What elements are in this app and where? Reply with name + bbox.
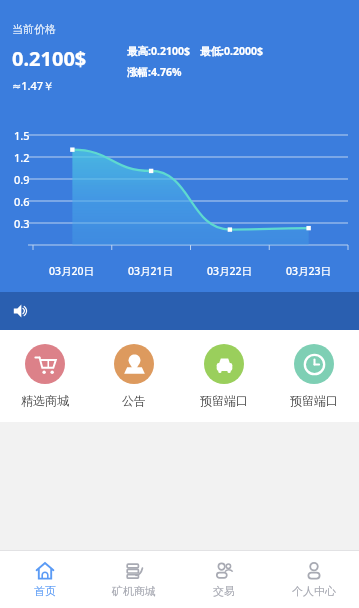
staticText: 1.5: [14, 128, 30, 143]
button[interactable]: 个人中心: [269, 550, 359, 608]
staticText: 精选商城: [21, 393, 69, 408]
staticText: 03月21日: [128, 264, 174, 278]
button[interactable]: 交易: [179, 550, 269, 608]
staticText: 0.6: [14, 194, 30, 209]
staticText: 03月20日: [49, 264, 95, 278]
staticText: 矿机商城: [112, 584, 156, 598]
button[interactable]: 精选商城: [0, 344, 89, 408]
staticText: 当前价格: [12, 22, 56, 36]
staticText: 0.9: [14, 172, 30, 187]
button[interactable]: 首页: [0, 550, 89, 608]
button[interactable]: 公告: [89, 344, 179, 408]
staticText: 03月22日: [207, 264, 253, 278]
staticText: 0.2100$: [12, 45, 87, 72]
button[interactable]: 预留端口: [269, 344, 359, 408]
staticText: 涨幅:4.76%: [127, 65, 182, 79]
button[interactable]: 矿机商城: [89, 550, 179, 608]
staticText: ≈1.47￥: [12, 78, 55, 93]
staticText: 预留端口: [290, 393, 338, 408]
staticText: 1.2: [14, 150, 30, 165]
staticText: 最低:0.2000$: [200, 44, 263, 58]
staticText: 个人中心: [292, 584, 336, 598]
staticText: 公告: [122, 393, 146, 408]
staticText: 首页: [34, 584, 56, 598]
staticText: 预留端口: [200, 393, 248, 408]
button[interactable]: 预留端口: [179, 344, 269, 408]
staticText: 最高:0.2100$: [127, 44, 190, 58]
button[interactable]: 公告: [0, 292, 359, 330]
staticText: 交易: [213, 584, 235, 598]
staticText: 03月23日: [286, 264, 332, 278]
staticText: 0.3: [14, 216, 30, 231]
